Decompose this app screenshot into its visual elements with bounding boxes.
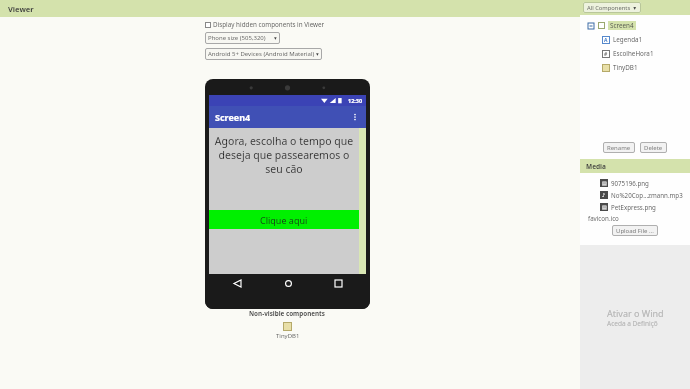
button[interactable]: More options (349, 111, 361, 123)
staticText: Aceda a Definiçõ (607, 319, 658, 328)
staticText: Clique aqui (260, 214, 308, 226)
button[interactable]: Screen4 (580, 21, 690, 30)
button[interactable]: Android 5+ Devices (Android Material) (205, 48, 322, 60)
staticText: Media (586, 162, 606, 171)
staticText: ▾ (274, 35, 277, 41)
staticText: PetExpress.png (611, 203, 656, 211)
button[interactable]: TinyDB1 (580, 63, 690, 72)
staticText: 9075196.png (611, 179, 649, 187)
staticText: Screen4 (215, 111, 251, 123)
staticText: TinyDB1 (613, 63, 638, 72)
button[interactable]: # (580, 49, 690, 58)
staticText: A (604, 37, 608, 44)
staticText: 12:30 (348, 97, 363, 104)
staticText: # (604, 51, 608, 58)
button[interactable]: ▤ (580, 179, 690, 187)
staticText: Delete (644, 144, 663, 152)
button[interactable]: Back (229, 275, 245, 291)
button[interactable]: ▤ (580, 203, 690, 211)
staticText: ▤ (602, 204, 607, 210)
staticText: Legenda1 (613, 35, 643, 44)
staticText: No%20Cop...zmann.mp3 (611, 191, 683, 199)
staticText: Non-visible components (249, 309, 326, 318)
staticText: Display hidden components in Viewer (213, 20, 325, 29)
staticText: EscolheHora1 (613, 49, 654, 58)
button[interactable]: Delete (640, 142, 667, 153)
staticText: ▾ (316, 51, 319, 57)
staticText: Android 5+ Devices (Android Material) (208, 50, 316, 58)
staticText: Rename (607, 144, 631, 152)
button[interactable]: Home (280, 275, 296, 291)
staticText: Phone size (505,320) (208, 34, 274, 42)
staticText: Agora, escolha o tempo que deseja que pa… (212, 134, 356, 176)
staticText: Ativar o Wind (607, 307, 664, 319)
button[interactable]: Upload File ... (612, 225, 658, 236)
staticText: All Components ▾ (587, 4, 637, 12)
staticText: Viewer (8, 4, 34, 14)
staticText: Upload File ... (616, 227, 654, 235)
button[interactable]: Recent apps (330, 275, 346, 291)
button[interactable]: All Components ▾ (587, 2, 637, 13)
button[interactable]: A (580, 35, 690, 44)
staticText: TinyDB1 (276, 332, 300, 340)
staticText: ▤ (602, 180, 607, 186)
button[interactable]: Rename (603, 142, 635, 153)
staticText: favicon.ico (588, 214, 619, 222)
button[interactable] (205, 22, 211, 28)
button[interactable]: ♪ (580, 191, 690, 199)
staticText: ♪ (602, 192, 606, 198)
button[interactable]: Clique aqui (209, 210, 359, 229)
staticText: Screen4 (610, 21, 634, 30)
button[interactable]: Phone size (505,320) (205, 32, 280, 44)
